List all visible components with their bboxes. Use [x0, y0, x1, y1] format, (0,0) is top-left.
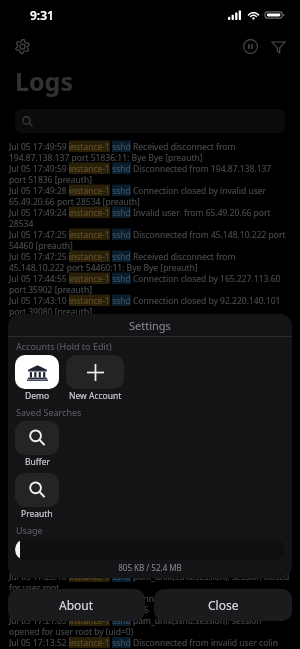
- staticText: Close: [208, 597, 239, 613]
- button[interactable]: Demo: [15, 355, 59, 402]
- staticText: Preauth: [21, 508, 53, 520]
- staticText: Jul 05 17:27:33 instance-1 sshd Connecti…: [9, 527, 290, 549]
- button[interactable]: Settings: [8, 32, 36, 60]
- staticText: Jul 05 17:47:25 instance-1 sshd Disconne…: [9, 229, 290, 251]
- button[interactable]: New Account: [66, 355, 124, 402]
- button[interactable]: Filter: [264, 32, 292, 60]
- staticText: New Account: [69, 390, 122, 402]
- staticText: Saved Searches: [16, 406, 82, 418]
- staticText: Jul 05 17:32:44 instance-1 sshd error: m…: [9, 471, 277, 483]
- staticText: Jul 05 17:42:58 instance-1 sshd Received…: [9, 317, 290, 339]
- button[interactable]: About: [8, 589, 145, 621]
- staticText: Jul 05 17:38:20 instance-1 sshd Disconne…: [9, 383, 290, 405]
- staticText: Buffer: [25, 456, 50, 468]
- staticText: Jul 05 17:33:21 instance-1 sshd Invalid …: [9, 449, 290, 471]
- staticText: Demo: [25, 390, 50, 402]
- button[interactable]: [15, 109, 285, 133]
- staticText: Jul 05 17:49:59 instance-1 sshd Disconne…: [9, 163, 290, 185]
- staticText: Jul 05 17:36:02 instance-1 sshd Received…: [9, 405, 290, 427]
- staticText: Jul 05 17:29:55 instance-1 sshd Received…: [9, 505, 290, 527]
- staticText: Accounts (Hold to Edit): [16, 340, 112, 352]
- staticText: Jul 05 17:43:10 instance-1 sshd Connecti…: [9, 295, 290, 317]
- staticText: Jul 05 17:49:24 instance-1 sshd Invalid …: [9, 207, 290, 229]
- staticText: Jul 05 17:34:47 instance-1 sshd Connecti…: [9, 427, 290, 449]
- staticText: Jul 05 17:39:41 instance-1 sshd Connecti…: [9, 361, 290, 383]
- button[interactable]: Pause: [236, 32, 264, 60]
- button[interactable]: Buffer: [15, 421, 59, 468]
- staticText: Settings: [129, 318, 171, 333]
- staticText: 9:31: [30, 7, 54, 23]
- button[interactable]: Preauth: [15, 473, 59, 520]
- staticText: Logs: [15, 64, 73, 98]
- staticText: Jul 05 17:49:59 instance-1 sshd Received…: [9, 141, 290, 163]
- staticText: About: [59, 597, 94, 613]
- staticText: Jul 05 17:31:09 instance-1 sshd Disconne…: [9, 483, 290, 505]
- staticText: Jul 05 17:13:52 instance-1 sshd Disconne…: [9, 637, 290, 649]
- button[interactable]: Close: [154, 589, 292, 621]
- staticText: Jul 05 17:22:40 instance-1 sshd Connecti…: [9, 593, 290, 615]
- staticText: Jul 05 17:21:05 instance-1 sshd pam_unix…: [9, 615, 290, 637]
- staticText: Jul 05 17:26:02 instance-1 sshd Connecti…: [9, 549, 290, 571]
- staticText: Jul 05 17:49:28 instance-1 sshd Connecti…: [9, 185, 290, 207]
- staticText: Jul 05 17:41:02 instance-1 sshd Invalid …: [9, 339, 290, 361]
- staticText: Jul 05 17:47:25 instance-1 sshd Received…: [9, 251, 290, 273]
- staticText: Usage: [16, 524, 43, 536]
- staticText: 805 KB / 52.4 MB: [8, 562, 292, 573]
- staticText: Jul 05 17:25:18 instance-1 sshd pam_unix…: [9, 571, 290, 593]
- staticText: Jul 05 17:44:55 instance-1 sshd Connecti…: [9, 273, 290, 295]
